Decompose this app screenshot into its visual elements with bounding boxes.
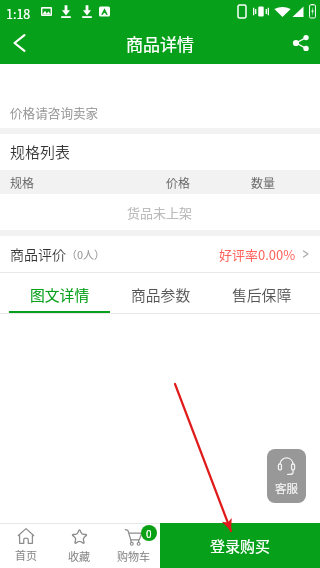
staticText: 价格 <box>166 174 191 191</box>
button[interactable]: 购物车 <box>106 523 160 568</box>
staticText: 收藏 <box>68 548 90 564</box>
button[interactable]: 图文详情 <box>9 273 110 313</box>
button[interactable]: 客服 <box>267 449 306 503</box>
button[interactable]: 商品参数 <box>110 273 211 313</box>
button[interactable]: 分享 <box>280 22 320 64</box>
staticText: 售后保障 <box>232 284 292 305</box>
staticText: 货品未上架 <box>127 203 193 222</box>
button[interactable]: 返回 <box>0 22 40 64</box>
staticText: 客服 <box>275 480 298 497</box>
staticText: 商品评价 <box>10 244 66 264</box>
staticText: 购物车 <box>117 548 150 564</box>
staticText: 商品详情 <box>126 31 194 56</box>
staticText: 商品参数 <box>131 284 191 305</box>
staticText: 登录购买 <box>210 535 271 557</box>
button[interactable]: 首页 <box>0 523 52 568</box>
staticText: 数量 <box>251 174 276 191</box>
staticText: 图文详情 <box>30 284 90 305</box>
staticText: 1:18 <box>6 4 31 22</box>
staticText: 好评率0.00% <box>219 245 296 264</box>
staticText: 规格列表 <box>10 141 71 163</box>
staticText: 0 <box>146 526 152 540</box>
button[interactable]: 售后保障 <box>211 273 312 313</box>
button[interactable]: 商品评价 <box>0 236 320 272</box>
staticText: （0人） <box>66 246 106 262</box>
staticText: 规格 <box>10 174 35 191</box>
button[interactable]: 登录购买 <box>160 523 320 568</box>
staticText: 价格请咨询卖家 <box>10 103 99 121</box>
button[interactable]: 收藏 <box>52 523 106 568</box>
staticText: 首页 <box>15 547 37 563</box>
